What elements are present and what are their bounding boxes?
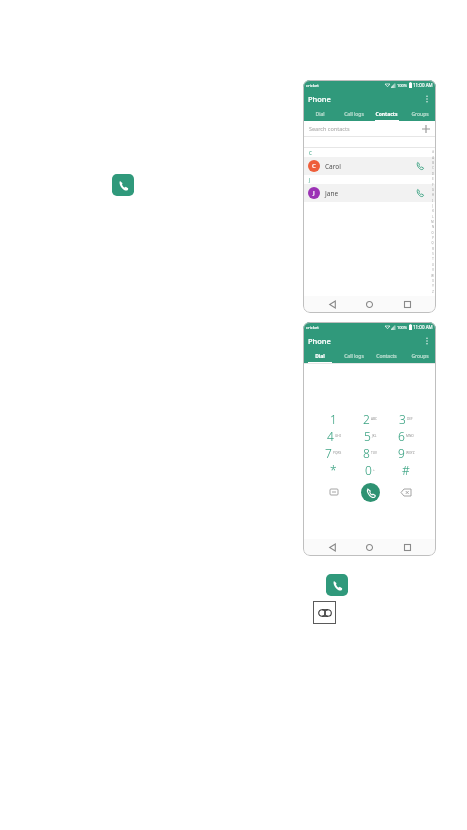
- staticText: Dial: [315, 353, 325, 360]
- staticText: K: [432, 209, 434, 213]
- staticText: B: [432, 161, 434, 165]
- staticText: 2: [363, 411, 370, 427]
- staticText: Y: [432, 284, 434, 288]
- button[interactable]: Home: [361, 296, 378, 313]
- button[interactable]: Phone app: [112, 174, 134, 196]
- staticText: V: [432, 268, 434, 272]
- button[interactable]: Recents: [399, 296, 416, 313]
- staticText: J: [313, 189, 315, 197]
- staticText: TUV: [371, 451, 378, 455]
- staticText: Call logs: [344, 111, 364, 118]
- staticText: 0: [365, 462, 372, 478]
- button[interactable]: Add contact: [420, 123, 432, 135]
- staticText: #: [432, 150, 434, 154]
- staticText: C: [432, 166, 434, 170]
- button[interactable]: Contacts: [370, 349, 403, 363]
- staticText: J: [309, 177, 311, 183]
- staticText: Phone: [308, 94, 331, 104]
- staticText: Jane: [325, 189, 339, 198]
- staticText: 11:00 AM: [413, 324, 433, 330]
- staticText: Contacts: [376, 353, 397, 360]
- staticText: JKL: [372, 434, 377, 438]
- button[interactable]: Keypad options: [327, 485, 341, 499]
- staticText: W: [431, 274, 434, 278]
- staticText: Groups: [411, 111, 429, 118]
- staticText: 11:00 AM: [413, 82, 433, 88]
- staticText: S: [432, 252, 434, 256]
- staticText: GHI: [335, 434, 341, 438]
- button[interactable]: 0: [352, 461, 388, 478]
- button[interactable]: Dial: [303, 349, 337, 363]
- button[interactable]: 8: [352, 444, 388, 461]
- staticText: C: [309, 150, 312, 156]
- button[interactable]: Contacts: [370, 107, 403, 121]
- staticText: 3: [399, 411, 406, 427]
- button[interactable]: C: [303, 157, 436, 175]
- staticText: Search contacts: [309, 125, 350, 132]
- staticText: 1: [330, 411, 337, 427]
- staticText: X: [432, 279, 434, 283]
- staticText: H: [432, 193, 434, 197]
- staticText: MNO: [406, 434, 414, 438]
- button[interactable]: Groups: [403, 107, 436, 121]
- button[interactable]: Groups: [403, 349, 436, 363]
- staticText: +: [373, 468, 375, 472]
- staticText: Groups: [411, 353, 429, 360]
- button[interactable]: Back: [324, 296, 341, 313]
- staticText: D: [432, 172, 434, 176]
- button[interactable]: Call Carol: [414, 160, 426, 172]
- button[interactable]: Call Jane: [414, 187, 426, 199]
- button[interactable]: Dial: [303, 107, 337, 121]
- button[interactable]: More options: [421, 93, 433, 105]
- staticText: Carol: [325, 162, 341, 171]
- button[interactable]: More options: [421, 335, 433, 347]
- staticText: Q: [431, 241, 434, 245]
- staticText: 5: [364, 428, 371, 444]
- staticText: 4: [327, 428, 334, 444]
- button[interactable]: Call logs: [337, 107, 370, 121]
- staticText: R: [432, 247, 434, 251]
- button[interactable]: Call logs: [337, 349, 370, 363]
- button[interactable]: Voicemail: [313, 601, 336, 624]
- staticText: 9: [398, 445, 405, 461]
- button[interactable]: Delete: [399, 485, 413, 499]
- staticText: C: [312, 162, 316, 170]
- staticText: N: [432, 225, 434, 229]
- staticText: G: [432, 188, 434, 192]
- staticText: DEF: [407, 417, 413, 421]
- button[interactable]: Search contacts: [309, 121, 432, 136]
- button[interactable]: *: [315, 461, 352, 478]
- button[interactable]: 4: [315, 427, 352, 444]
- staticText: T: [432, 257, 434, 261]
- staticText: Z: [432, 290, 434, 294]
- staticText: P: [432, 236, 434, 240]
- button[interactable]: Call: [361, 483, 380, 502]
- staticText: U: [432, 263, 434, 267]
- button[interactable]: 1: [315, 410, 352, 427]
- staticText: *: [330, 462, 337, 478]
- button[interactable]: 7: [315, 444, 352, 461]
- staticText: A: [432, 156, 434, 160]
- button[interactable]: 3: [388, 410, 424, 427]
- staticText: #: [402, 462, 410, 478]
- button[interactable]: J: [303, 184, 436, 202]
- staticText: PQRS: [333, 451, 342, 455]
- button[interactable]: Phone app: [326, 574, 348, 596]
- button[interactable]: 5: [352, 427, 388, 444]
- staticText: Phone: [308, 336, 331, 346]
- staticText: E: [432, 177, 434, 181]
- staticText: O: [431, 231, 434, 235]
- staticText: cricket: [306, 83, 319, 88]
- button[interactable]: 2: [352, 410, 388, 427]
- staticText: M: [431, 220, 434, 224]
- staticText: 100%: [397, 83, 408, 88]
- button[interactable]: 6: [388, 427, 424, 444]
- button[interactable]: 9: [388, 444, 424, 461]
- button[interactable]: Home: [361, 539, 378, 556]
- button[interactable]: #: [388, 461, 424, 478]
- staticText: WXYZ: [406, 451, 415, 455]
- button[interactable]: Back: [324, 539, 341, 556]
- staticText: 7: [325, 445, 332, 461]
- button[interactable]: Recents: [399, 539, 416, 556]
